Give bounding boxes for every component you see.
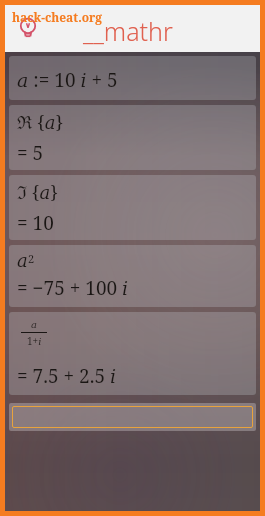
staticText: = 7.5 + 2.5 𝑖 xyxy=(17,363,117,389)
button[interactable]: Expression input xyxy=(12,406,253,428)
staticText: ℜ {𝑎} xyxy=(17,110,64,135)
staticText: 2 xyxy=(28,251,35,266)
staticText: 𝑎 xyxy=(31,319,37,331)
button[interactable]: mathr app icon xyxy=(11,12,45,46)
staticText: = 10 xyxy=(17,210,54,236)
staticText: 𝑎 := 10 𝑖 + 5 xyxy=(17,67,118,93)
staticText: 1+𝑖 xyxy=(27,334,42,348)
button[interactable]: ℑ {𝑎} xyxy=(9,175,256,240)
button[interactable]: 𝑎 xyxy=(9,245,256,307)
staticText: ℑ {𝑎} xyxy=(17,180,58,205)
staticText: 𝑎 xyxy=(17,250,28,271)
staticText: = −75 + 100 𝑖 xyxy=(17,275,129,301)
button[interactable]: 𝑎 := 10 𝑖 + 5 xyxy=(9,56,256,100)
button[interactable]: ℜ {𝑎} xyxy=(9,105,256,170)
staticText: hack-cheat.org xyxy=(12,9,103,25)
staticText: = 5 xyxy=(17,140,44,166)
staticText: __mathr xyxy=(83,14,173,48)
button[interactable]: 𝑎 xyxy=(9,312,256,395)
